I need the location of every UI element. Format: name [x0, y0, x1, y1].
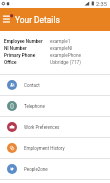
button[interactable]: Contact	[0, 75, 110, 95]
staticText: Employee Number	[4, 39, 50, 45]
staticText: People2one	[24, 167, 48, 172]
staticText: 2:35	[96, 1, 107, 8]
button[interactable]: Work Preferences	[0, 117, 110, 137]
staticText: examplePhone	[50, 53, 82, 59]
staticText: example1	[50, 39, 71, 45]
staticText: exampleNI	[50, 46, 73, 52]
button[interactable]: Employment History	[0, 138, 110, 158]
staticText: Employment History	[24, 146, 65, 151]
staticText: Uxbridge (717)	[50, 60, 81, 66]
button[interactable]: People2one	[0, 159, 110, 179]
button[interactable]: Telephone	[0, 96, 110, 116]
staticText: Work Preferences	[24, 125, 60, 130]
staticText: NI Number	[4, 46, 50, 52]
staticText: Contact	[24, 83, 40, 88]
staticText: Your Details	[15, 15, 60, 25]
staticText: Primary Phone	[4, 53, 50, 59]
staticText: Office	[4, 60, 50, 66]
button[interactable]: Open navigation menu	[0, 8, 13, 21]
staticText: Telephone	[24, 104, 45, 109]
